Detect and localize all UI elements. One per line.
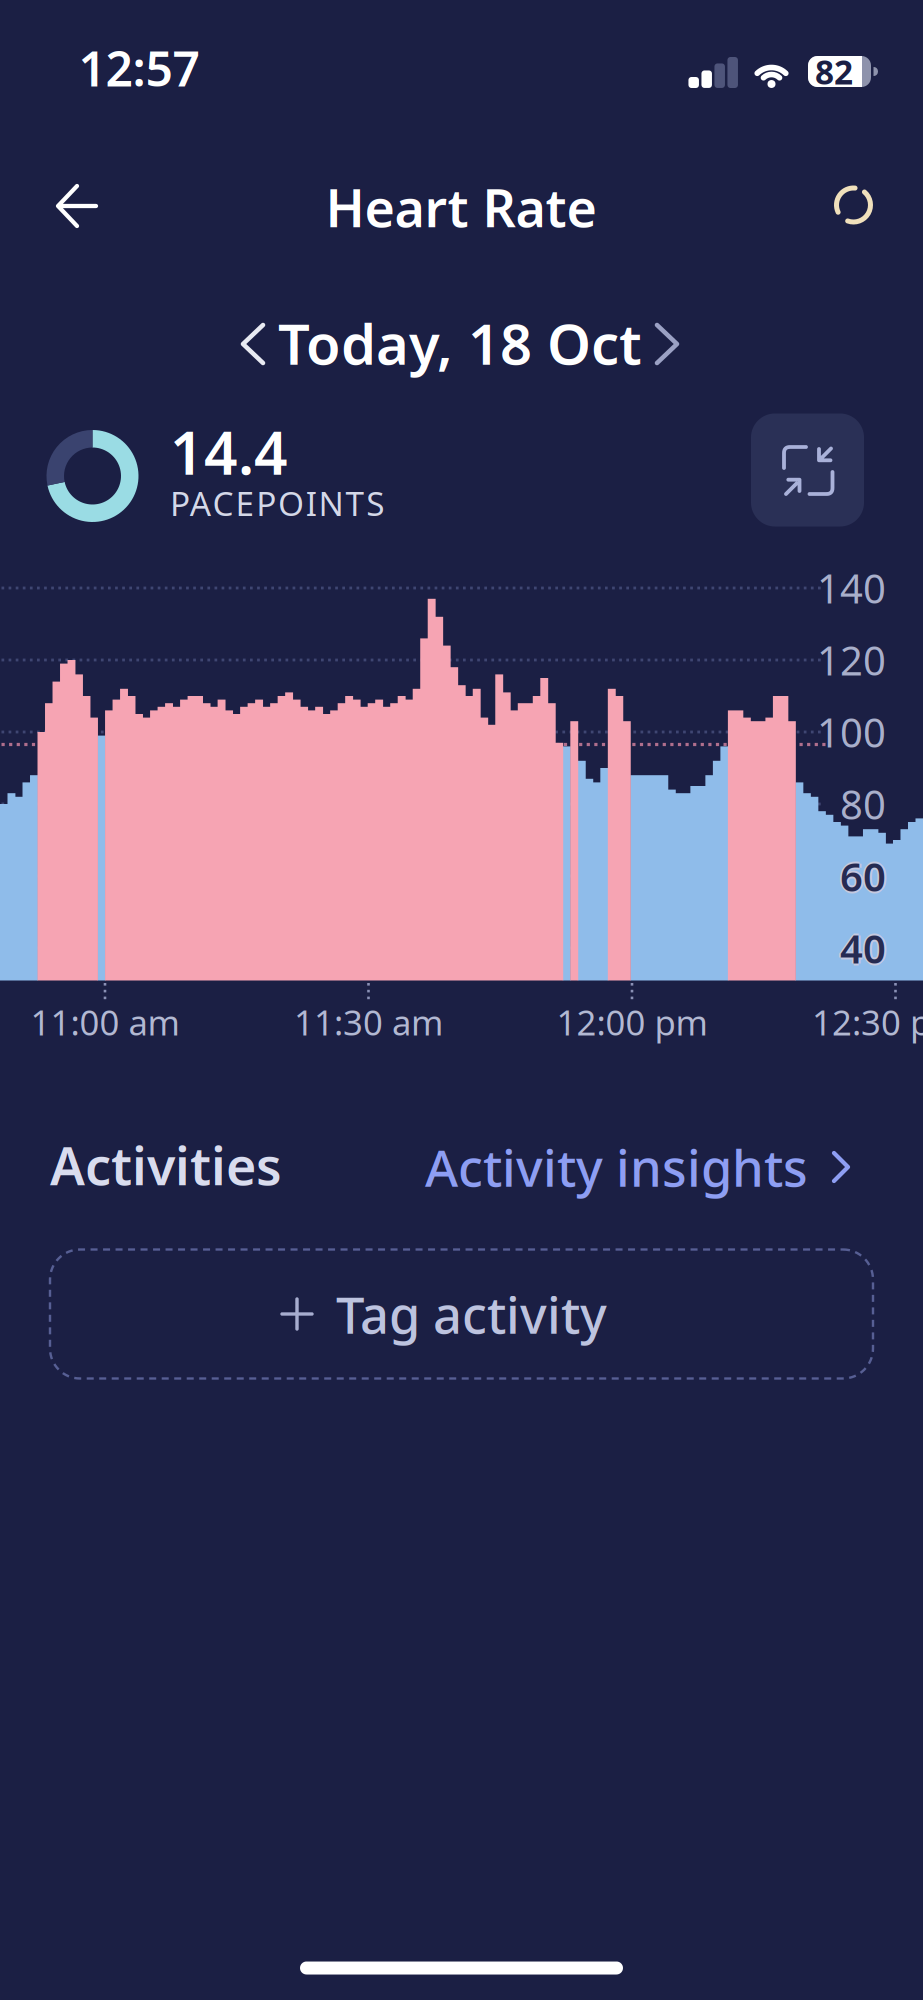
staticText: 40 [840, 923, 886, 976]
staticText: 60 [840, 847, 886, 900]
staticText: 80 [840, 777, 886, 830]
staticText: 11:00 am [30, 999, 179, 1045]
staticText: 14.4 [170, 413, 288, 491]
staticText: Activities [50, 1130, 282, 1200]
staticText: 60 [842, 849, 888, 902]
button[interactable]: Activity insights [353, 1133, 853, 1201]
staticText: 60 [840, 849, 886, 902]
button[interactable]: Previous day [232, 313, 294, 375]
staticText: 120 [817, 633, 886, 686]
button[interactable]: Expand chart [751, 413, 864, 526]
staticText: 40 [838, 921, 884, 974]
button[interactable]: Back [37, 173, 103, 239]
button[interactable]: Tag activity [50, 1249, 873, 1378]
button[interactable]: Next day [626, 313, 688, 375]
staticText: Activity insights [425, 1133, 808, 1201]
staticText: 11:30 am [294, 999, 443, 1045]
staticText: 12:57 [78, 36, 199, 100]
staticText: 40 [840, 921, 886, 974]
staticText: Heart Rate [325, 172, 596, 242]
staticText: 12:00 pm [556, 999, 707, 1045]
staticText: Today, 18 Oct [278, 306, 642, 380]
staticText: 12:30 pm [812, 999, 923, 1045]
staticText: 40 [840, 919, 886, 972]
staticText: 40 [842, 921, 888, 974]
staticText: Tag activity [336, 1280, 607, 1348]
button[interactable]: Today, 18 Oct [278, 306, 642, 380]
staticText: 82 [815, 49, 853, 94]
staticText: 140 [817, 561, 886, 614]
staticText: 60 [840, 851, 886, 904]
staticText: PACEPOINTS [170, 481, 384, 525]
staticText: 100 [817, 705, 886, 758]
staticText: 60 [838, 849, 884, 902]
